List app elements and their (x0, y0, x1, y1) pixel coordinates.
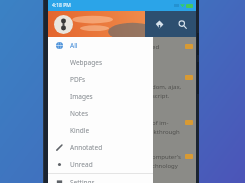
staticText: Webpages (70, 58, 102, 67)
staticText: omputer's (152, 153, 181, 161)
staticText: All (70, 41, 78, 50)
staticText: Kindle (70, 126, 90, 135)
staticText: ed (152, 43, 160, 51)
staticText: Notes (70, 109, 88, 118)
staticText: Settings (70, 178, 95, 183)
button[interactable]: Tags (149, 14, 169, 34)
staticText: Images (70, 92, 93, 101)
staticText: 4:18 PM (52, 2, 71, 9)
button[interactable]: Kindle (48, 122, 153, 139)
staticText: dom, ajax, (152, 83, 182, 91)
button[interactable]: Profile (54, 15, 73, 34)
staticText: of im- (152, 119, 169, 127)
staticText: script. (152, 92, 170, 100)
staticText: chnology (152, 162, 178, 170)
staticText: PDFs (70, 75, 86, 84)
button[interactable]: Unread (48, 156, 153, 173)
button[interactable]: Images (48, 88, 153, 105)
button[interactable]: All (48, 37, 153, 54)
button[interactable]: Search (172, 14, 192, 34)
staticText: lkthrough (152, 128, 180, 136)
button[interactable]: Notes (48, 105, 153, 122)
staticText: Unread (70, 160, 93, 169)
button[interactable]: PDFs (48, 71, 153, 88)
button[interactable]: Settings (48, 174, 153, 183)
button[interactable]: Webpages (48, 54, 153, 71)
staticText: Annotated (70, 143, 103, 152)
button[interactable]: Annotated (48, 139, 153, 156)
